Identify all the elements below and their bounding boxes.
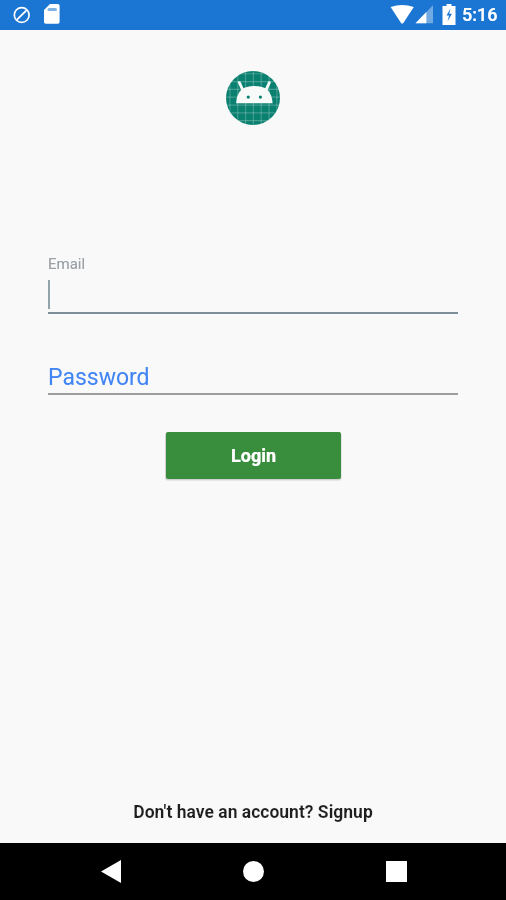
staticText: Password (48, 364, 150, 391)
staticText: 5:16 (462, 4, 498, 25)
staticText: Login (231, 445, 277, 466)
button[interactable] (48, 280, 458, 312)
button[interactable]: Home (217, 843, 289, 900)
button[interactable]: Don't have an account? Signup (133, 802, 373, 823)
button[interactable]: Password (48, 359, 458, 391)
staticText: Email (48, 255, 86, 273)
button[interactable]: Recent apps (360, 843, 432, 900)
button[interactable]: Login (166, 432, 341, 479)
button[interactable]: Back (75, 843, 147, 900)
staticText: Don't have an account? Signup (133, 802, 373, 823)
